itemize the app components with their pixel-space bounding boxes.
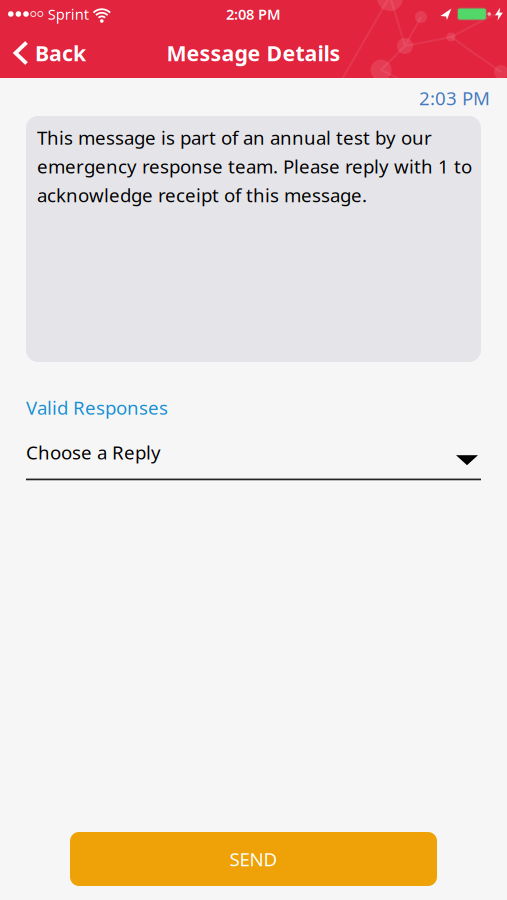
staticText: 2:08 PM <box>226 4 281 24</box>
staticText: SEND <box>229 847 277 871</box>
staticText: 2:03 PM <box>419 86 490 110</box>
button[interactable]: Back <box>0 39 86 67</box>
staticText: Valid Responses <box>26 395 168 420</box>
staticText: Choose a Reply <box>26 440 161 465</box>
staticText: Message Details <box>166 39 340 67</box>
staticText: Back <box>35 39 86 67</box>
staticText: Sprint <box>48 4 89 24</box>
button[interactable]: SEND <box>70 832 437 886</box>
button[interactable]: Choose a Reply <box>0 440 507 480</box>
staticText: This message is part of an annual test b… <box>37 125 472 207</box>
